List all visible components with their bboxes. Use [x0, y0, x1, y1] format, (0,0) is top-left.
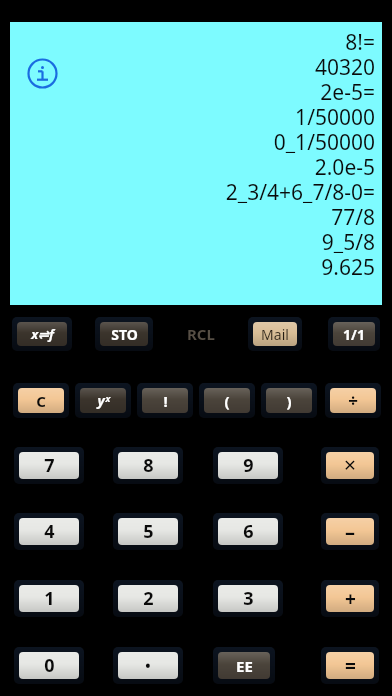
- staticText: 1/1: [343, 325, 365, 344]
- staticText: 2: [143, 586, 154, 611]
- staticText: x⇌f: [31, 325, 54, 343]
- staticText: +: [345, 586, 356, 612]
- staticText: C: [36, 391, 46, 411]
- staticText: •: [145, 656, 151, 675]
- button[interactable]: 9: [213, 447, 283, 484]
- staticText: !: [163, 391, 168, 411]
- button[interactable]: Multiply: [321, 447, 379, 484]
- button[interactable]: Info: [27, 58, 58, 89]
- button[interactable]: Mail: [248, 317, 302, 351]
- button[interactable]: C: [13, 383, 69, 418]
- staticText: 7: [44, 453, 55, 478]
- staticText: 6: [243, 519, 254, 544]
- button[interactable]: Factorial: [137, 383, 193, 418]
- staticText: 77/8: [331, 203, 375, 228]
- staticText: 1: [44, 586, 55, 611]
- staticText: 2.0e-5: [314, 153, 375, 178]
- staticText: –: [345, 518, 355, 545]
- button[interactable]: Divide: [325, 383, 381, 418]
- button[interactable]: Close parenthesis: [261, 383, 317, 418]
- staticText: 0_1/50000: [273, 128, 375, 153]
- staticText: EE: [236, 656, 253, 676]
- button[interactable]: 2: [113, 580, 183, 617]
- button[interactable]: y to the power x: [75, 383, 131, 418]
- staticText: (: [224, 391, 230, 411]
- staticText: 1/50000: [295, 103, 375, 128]
- button[interactable]: Open parenthesis: [199, 383, 255, 418]
- button[interactable]: STO: [95, 317, 153, 351]
- button[interactable]: Decimal point: [113, 647, 183, 684]
- button[interactable]: Swap x and f: [12, 317, 72, 351]
- staticText: 9_5/8: [321, 228, 375, 253]
- button[interactable]: 1: [14, 580, 84, 617]
- staticText: yˣ: [97, 391, 110, 410]
- button[interactable]: Equals: [321, 647, 379, 684]
- button[interactable]: 3: [213, 580, 283, 617]
- button[interactable]: 8: [113, 447, 183, 484]
- button[interactable]: 5: [113, 513, 183, 550]
- staticText: STO: [111, 325, 138, 344]
- staticText: Mail: [261, 325, 289, 344]
- button[interactable]: 4: [14, 513, 84, 550]
- staticText: 2_3/4+6_7/8-0=: [225, 178, 375, 203]
- staticText: 9.625: [321, 253, 375, 278]
- staticText: ÷: [348, 389, 358, 412]
- staticText: 40320: [314, 53, 375, 78]
- staticText: 8!=: [345, 28, 375, 53]
- button[interactable]: Info: [10, 22, 382, 305]
- staticText: ✕: [343, 456, 357, 475]
- staticText: =: [345, 653, 356, 679]
- staticText: 3: [243, 586, 254, 611]
- staticText: 8: [143, 453, 154, 478]
- button[interactable]: RCL: [172, 317, 230, 351]
- button[interactable]: 1/1: [328, 317, 380, 351]
- staticText: RCL: [187, 324, 215, 344]
- staticText: 4: [44, 519, 55, 544]
- button[interactable]: 7: [14, 447, 84, 484]
- button[interactable]: Plus: [321, 580, 379, 617]
- staticText: ): [286, 391, 292, 411]
- button[interactable]: 6: [213, 513, 283, 550]
- staticText: 5: [143, 519, 154, 544]
- button[interactable]: 0: [14, 647, 84, 684]
- button[interactable]: Minus: [321, 513, 379, 550]
- staticText: 2e-5=: [320, 78, 375, 103]
- staticText: 0: [44, 653, 55, 678]
- staticText: 9: [243, 453, 254, 478]
- button[interactable]: Exponent: [213, 647, 275, 684]
